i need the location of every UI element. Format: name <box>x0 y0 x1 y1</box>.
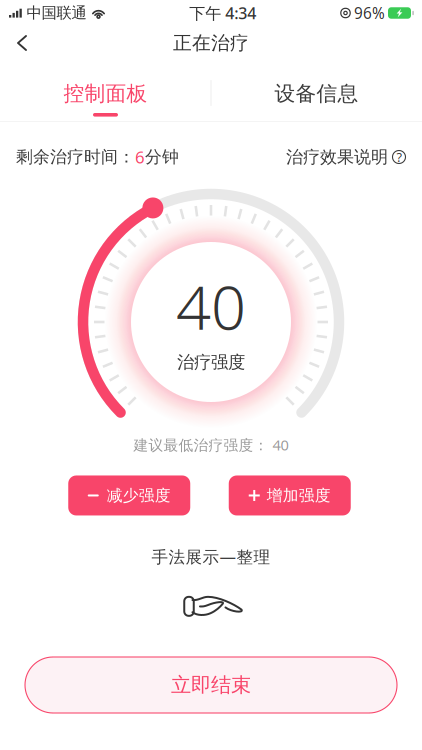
button[interactable]: 返回 <box>0 21 46 65</box>
button[interactable]: 设备信息 <box>211 70 422 122</box>
button[interactable]: 减少强度 <box>68 475 190 515</box>
staticText: ? <box>396 149 401 165</box>
staticText: 设备信息 <box>274 81 358 106</box>
staticText: 剩余治疗时间： <box>16 147 135 167</box>
staticText: 增加强度 <box>267 486 331 505</box>
staticText: 正在治疗 <box>173 31 249 54</box>
button[interactable]: 增加强度 <box>229 475 351 515</box>
staticText: 96% <box>354 3 385 23</box>
staticText: 控制面板 <box>63 81 147 106</box>
staticText: 6 <box>135 146 145 168</box>
staticText: 中国联通 <box>26 4 86 22</box>
staticText: 40 <box>176 265 246 346</box>
staticText: 治疗强度 <box>177 352 245 373</box>
staticText: 手法展示—整理 <box>151 545 270 567</box>
staticText: 立即结束 <box>171 673 251 697</box>
staticText: 建议最低治疗强度： 40 <box>133 435 288 454</box>
staticText: 治疗效果说明 <box>286 146 388 167</box>
button[interactable]: 治疗效果说明 <box>286 146 406 167</box>
staticText: 下午 4:34 <box>189 2 256 24</box>
button[interactable]: 立即结束 <box>25 657 397 713</box>
button[interactable]: 控制面板 <box>0 70 211 122</box>
staticText: 分钟 <box>145 147 179 167</box>
staticText: 减少强度 <box>107 486 171 505</box>
